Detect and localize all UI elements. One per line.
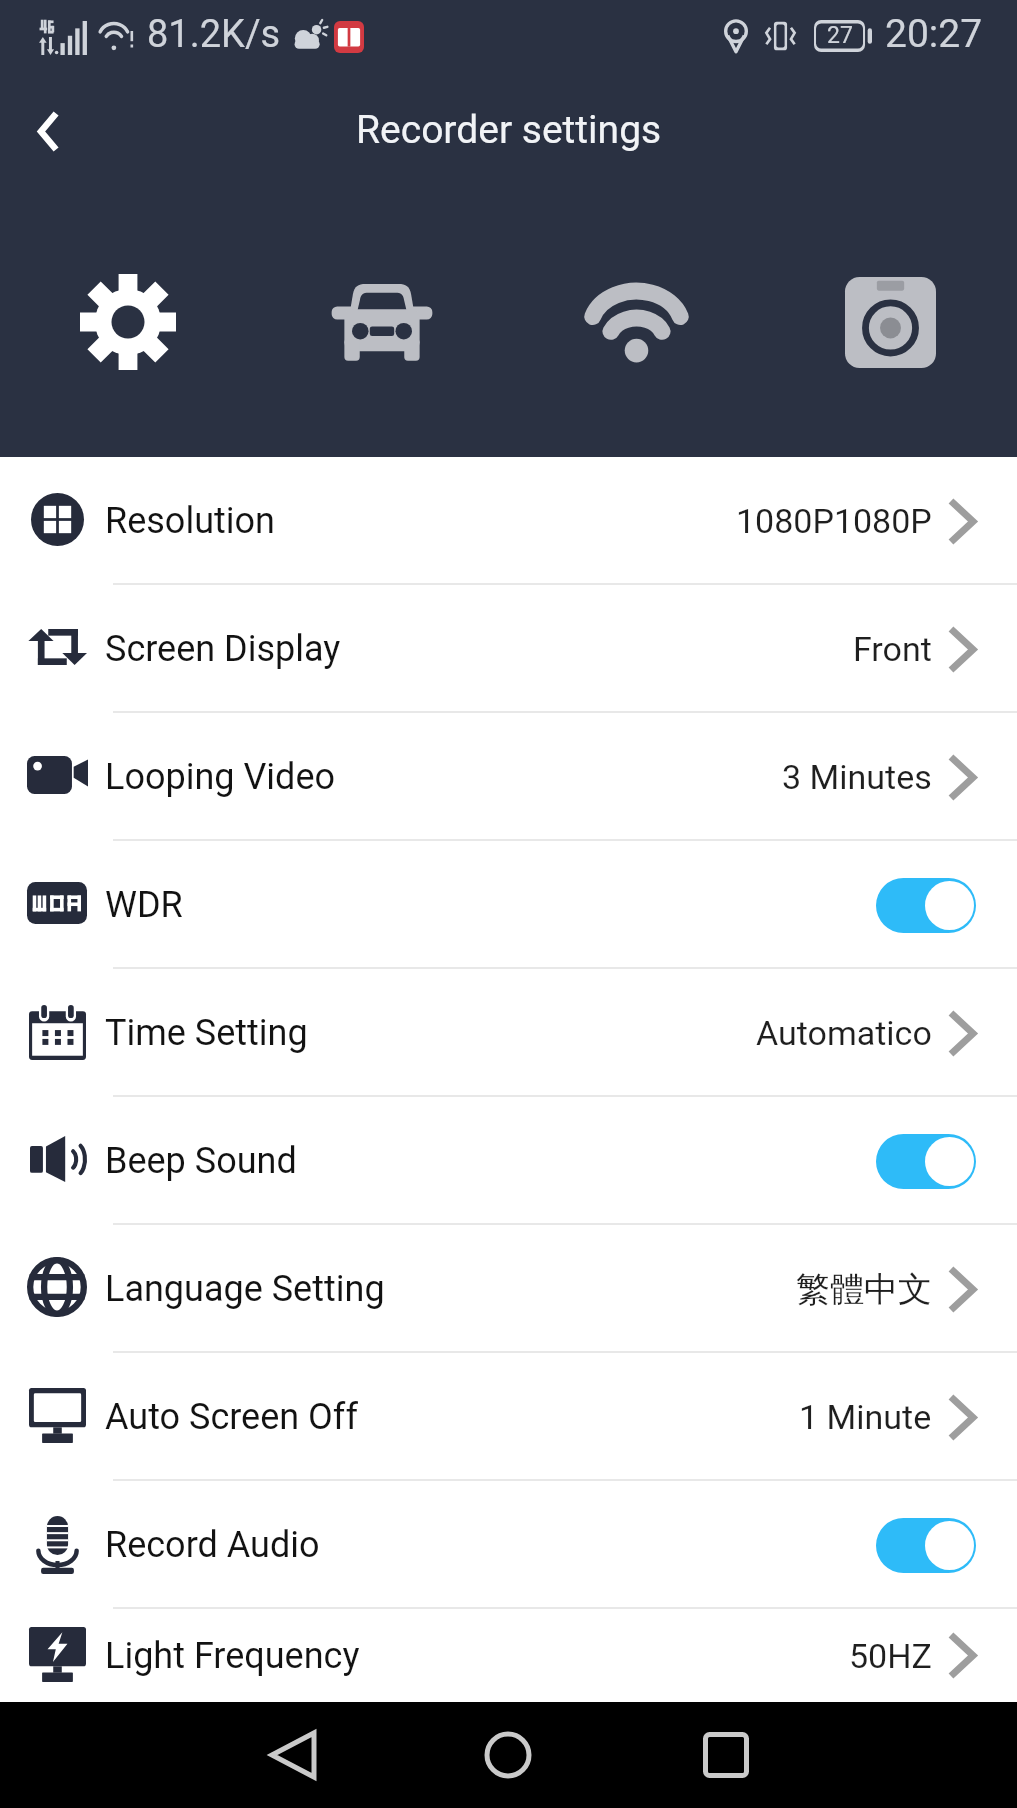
staticText: Screen Display: [105, 628, 341, 670]
staticText: 50HZ: [849, 1636, 932, 1676]
staticText: Time Setting: [105, 1012, 308, 1054]
staticText: 3 Minutes: [782, 757, 932, 797]
staticText: Automatico: [756, 1013, 932, 1053]
staticText: Language Setting: [105, 1268, 385, 1310]
button[interactable]: Beep Sound: [0, 1097, 1017, 1225]
button[interactable]: Language Setting: [0, 1225, 1017, 1353]
button[interactable]: Back: [240, 1702, 346, 1808]
staticText: Resolution: [105, 500, 275, 542]
staticText: Looping Video: [105, 756, 336, 798]
button[interactable]: Looping Video: [0, 713, 1017, 841]
button[interactable]: Camera tab: [763, 247, 1017, 397]
button[interactable]: Record Audio: [0, 1481, 1017, 1609]
staticText: 81.2K/s: [147, 12, 281, 57]
staticText: 繁體中文: [796, 1268, 932, 1311]
staticText: Record Audio: [105, 1524, 320, 1566]
staticText: 20:27: [885, 11, 983, 57]
button[interactable]: Recent apps: [673, 1702, 779, 1808]
button[interactable]: Auto Screen Off: [0, 1353, 1017, 1481]
staticText: 1 Minute: [799, 1397, 932, 1437]
staticText: Auto Screen Off: [105, 1396, 358, 1438]
button[interactable]: WDR switch: [876, 878, 976, 933]
button[interactable]: Record Audio switch: [876, 1518, 976, 1573]
button[interactable]: Beep Sound switch: [876, 1134, 976, 1189]
button[interactable]: Light Frequency: [0, 1609, 1017, 1702]
button[interactable]: Back: [5, 89, 89, 173]
staticText: Front: [853, 629, 932, 669]
button[interactable]: Time Setting: [0, 969, 1017, 1097]
button[interactable]: Wi-Fi tab: [509, 247, 763, 397]
staticText: Recorder settings: [356, 107, 662, 153]
staticText: WDR: [105, 884, 183, 926]
staticText: Light Frequency: [105, 1635, 360, 1677]
button[interactable]: Home: [455, 1702, 561, 1808]
button[interactable]: Resolution: [0, 457, 1017, 585]
staticText: Beep Sound: [105, 1140, 297, 1182]
button[interactable]: Settings tab: [0, 247, 255, 397]
button[interactable]: Car tab: [255, 247, 509, 397]
button[interactable]: Screen Display: [0, 585, 1017, 713]
staticText: 1080P1080P: [736, 501, 932, 541]
staticText: 27: [827, 22, 853, 49]
button[interactable]: WDR: [0, 841, 1017, 969]
